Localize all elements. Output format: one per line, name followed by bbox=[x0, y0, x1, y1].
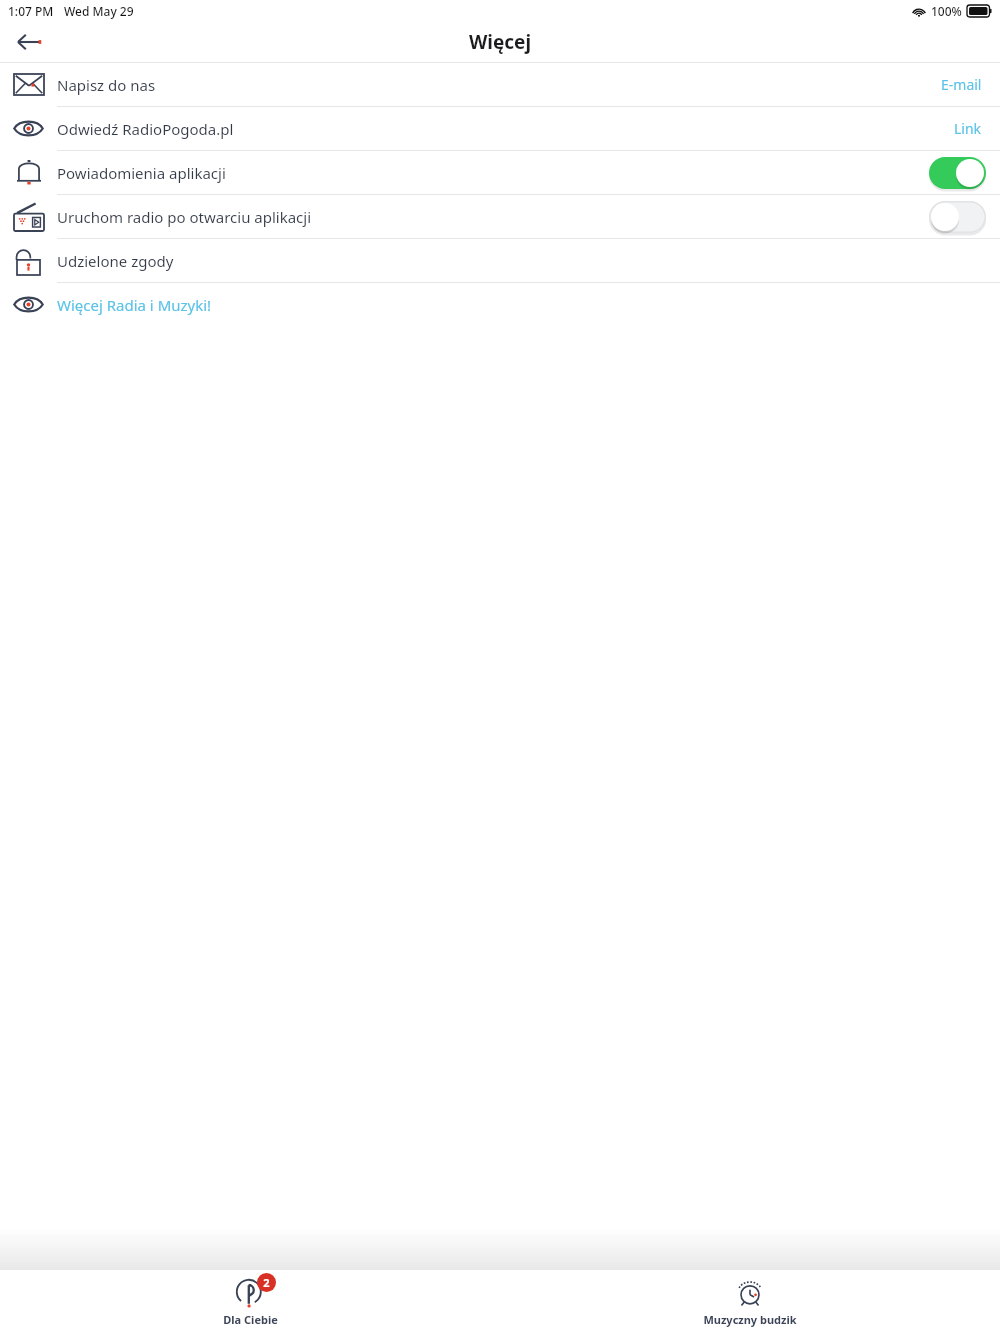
button[interactable]: Udzielone zgody bbox=[0, 239, 1000, 282]
button[interactable]: Toggle on bbox=[929, 157, 986, 189]
staticText: Uruchom radio po otwarciu aplikacji bbox=[57, 207, 929, 227]
staticText: Link bbox=[954, 119, 982, 138]
staticText: Napisz do nas bbox=[57, 75, 941, 95]
staticText: Wed May 29 bbox=[64, 3, 134, 19]
button[interactable]: 2 bbox=[165, 1270, 335, 1327]
staticText: Powiadomienia aplikacji bbox=[57, 163, 929, 183]
staticText: Odwiedź RadioPogoda.pl bbox=[57, 119, 954, 139]
button[interactable]: Napisz do nas bbox=[0, 63, 1000, 106]
button[interactable]: Uruchom radio po otwarciu aplikacji bbox=[0, 195, 1000, 238]
staticText: E-mail bbox=[941, 75, 982, 94]
button[interactable]: Muzyczny budzik bbox=[665, 1270, 835, 1327]
staticText: 2 bbox=[263, 1275, 270, 1290]
staticText: Udzielone zgody bbox=[57, 251, 1000, 271]
button[interactable]: Więcej Radia i Muzyki! bbox=[0, 283, 1000, 326]
button[interactable]: Powiadomienia aplikacji bbox=[0, 151, 1000, 194]
staticText: Muzyczny budzik bbox=[703, 1312, 797, 1327]
staticText: 1:07 PM bbox=[8, 3, 54, 19]
button[interactable]: Back bbox=[8, 22, 52, 62]
button[interactable]: Odwiedź RadioPogoda.pl bbox=[0, 107, 1000, 150]
staticText: 100% bbox=[931, 3, 962, 19]
button[interactable]: Toggle off bbox=[929, 201, 986, 233]
staticText: Więcej Radia i Muzyki! bbox=[57, 295, 1000, 315]
staticText: Dla Ciebie bbox=[223, 1312, 278, 1327]
staticText: Więcej bbox=[469, 29, 532, 55]
